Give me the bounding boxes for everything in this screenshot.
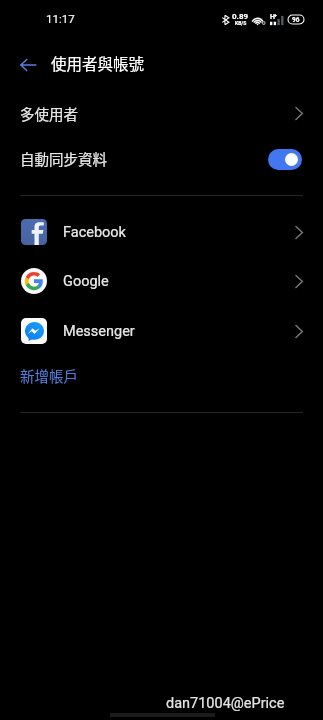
staticText: KB/S xyxy=(235,20,247,26)
staticText: 96 xyxy=(292,16,300,24)
staticText: 11:17 xyxy=(46,12,75,25)
button[interactable]: 多使用者 xyxy=(0,94,323,132)
button[interactable]: Google xyxy=(0,259,323,303)
button[interactable]: Facebook xyxy=(0,210,323,254)
button[interactable]: Back xyxy=(8,45,44,81)
button[interactable]: 自動同步資料 xyxy=(0,139,323,177)
button[interactable]: 新增帳戶 xyxy=(0,357,323,393)
staticText: Google xyxy=(63,273,109,290)
button[interactable]: Messenger xyxy=(0,309,323,353)
other: Open xyxy=(295,275,303,288)
staticText: 新增帳戶 xyxy=(20,365,78,386)
staticText: Facebook xyxy=(63,224,126,241)
other: Open xyxy=(295,107,303,120)
staticText: 自動同步資料 xyxy=(20,148,107,169)
staticText: dan71004@ePrice xyxy=(166,695,285,712)
staticText: 多使用者 xyxy=(20,103,78,124)
other: Open xyxy=(295,226,303,239)
staticText: 0.89 xyxy=(232,12,249,21)
other: Open xyxy=(295,325,303,338)
button[interactable]: Auto sync toggle xyxy=(268,149,302,170)
staticText: Messenger xyxy=(63,323,135,340)
staticText: 使用者與帳號 xyxy=(51,52,145,74)
staticText: + xyxy=(274,12,277,18)
staticText: H xyxy=(270,13,275,21)
